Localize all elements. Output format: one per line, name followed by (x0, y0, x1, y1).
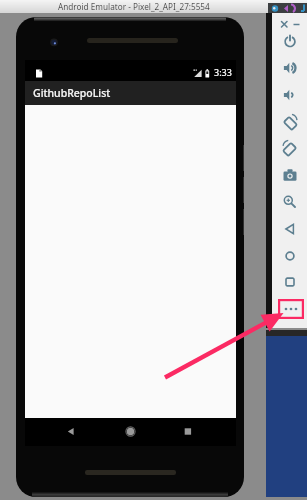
button[interactable]: Close (276, 16, 292, 32)
button[interactable]: More (278, 299, 304, 319)
staticText: GithubRepoList (33, 86, 111, 100)
button[interactable]: Home (278, 244, 302, 268)
button[interactable]: Rotate right (278, 136, 302, 160)
button[interactable]: Zoom (278, 190, 302, 214)
staticText: 3:33 (214, 66, 232, 78)
button[interactable]: Back (278, 217, 302, 241)
button[interactable]: GithubRepoList (25, 81, 236, 105)
staticText: Android Emulator - Pixel_2_API_27:5554 (58, 1, 210, 12)
button[interactable]: Power (278, 29, 302, 53)
button[interactable]: Take screenshot (278, 163, 302, 187)
button[interactable]: Overview (278, 270, 302, 294)
button[interactable]: Rotate left (278, 110, 302, 134)
button[interactable]: Volume up (278, 56, 302, 80)
button[interactable]: Volume down (278, 83, 302, 107)
button[interactable]: Minimise (289, 16, 305, 32)
